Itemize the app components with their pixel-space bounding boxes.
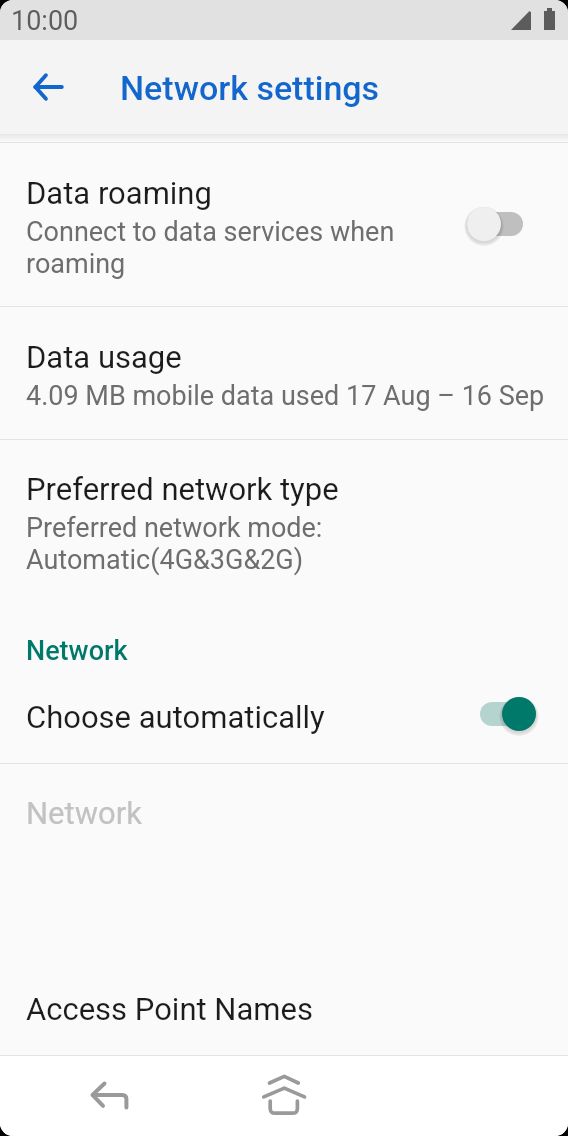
staticText: Access Point Names <box>26 991 313 1027</box>
staticText: Network <box>26 795 142 831</box>
staticText: Network <box>26 635 128 667</box>
button[interactable]: Data roaming <box>0 143 568 307</box>
button[interactable]: Network <box>0 764 568 884</box>
button[interactable]: Access Point Names <box>0 960 568 1055</box>
button[interactable]: Data roaming off <box>467 207 523 241</box>
staticText: Network settings <box>120 68 380 108</box>
staticText: Data roaming <box>26 175 212 211</box>
button[interactable]: Navigate up <box>18 57 78 117</box>
button[interactable]: Home <box>194 1056 374 1136</box>
button[interactable]: Choose automatically <box>0 688 568 764</box>
button[interactable]: Back <box>19 1056 199 1136</box>
staticText: Choose automatically <box>26 699 325 735</box>
staticText: Preferred network type <box>26 471 339 507</box>
button[interactable]: Preferred network type <box>0 440 568 620</box>
staticText: 10:00 <box>11 5 79 37</box>
staticText: Preferred network mode: Automatic(4G&3G&… <box>26 512 446 575</box>
button[interactable]: Data usage <box>0 307 568 440</box>
staticText: 4.09 MB mobile data used 17 Aug – 16 Sep <box>26 380 545 412</box>
staticText: Data usage <box>26 339 182 375</box>
button[interactable]: Choose automatically on <box>480 697 536 731</box>
staticText: Connect to data services when roaming <box>26 216 426 279</box>
